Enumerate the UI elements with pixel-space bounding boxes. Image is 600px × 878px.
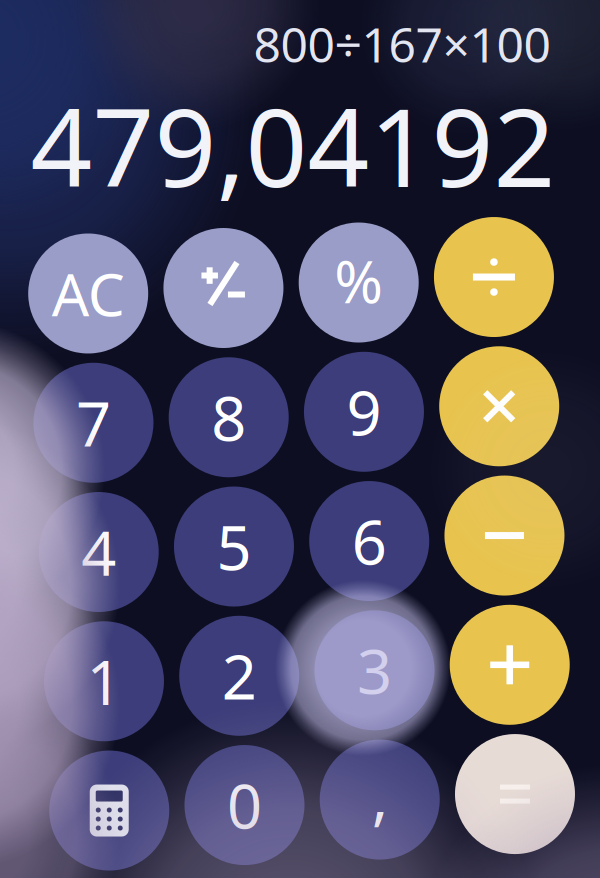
button[interactable]: Minus (444, 475, 564, 595)
staticText: 9 (346, 371, 381, 452)
button[interactable]: 6 (309, 481, 429, 601)
button[interactable]: 9 (304, 352, 424, 472)
button[interactable]: 2 (179, 616, 299, 736)
staticText: 6 (352, 500, 387, 582)
staticText: 1 (86, 641, 121, 722)
button[interactable]: 0 (184, 745, 304, 865)
staticText: 3 (357, 630, 392, 711)
button[interactable]: 5 (174, 486, 294, 606)
staticText: 8 (211, 376, 246, 458)
staticText: % (334, 242, 383, 319)
button[interactable]: 8 (169, 357, 289, 477)
button[interactable]: 1 (44, 621, 164, 741)
staticText: 2 (222, 635, 257, 716)
button[interactable]: Multiply (439, 346, 559, 466)
button[interactable]: % (299, 222, 419, 342)
button[interactable]: 3 (314, 610, 434, 730)
button[interactable]: , (320, 740, 440, 860)
staticText: 7 (76, 382, 111, 463)
button[interactable]: AC (28, 233, 148, 353)
staticText: AC (52, 254, 125, 332)
staticText: 479,04192 (30, 73, 555, 217)
staticText: 4 (81, 511, 116, 593)
button[interactable]: Equals (455, 734, 575, 854)
button[interactable]: Plus (450, 605, 570, 725)
staticText: , (372, 755, 388, 836)
button[interactable]: Calculator history (49, 750, 169, 870)
button[interactable]: 4 (39, 492, 159, 612)
staticText: 0 (227, 764, 262, 846)
staticText: 800÷167×100 (253, 12, 550, 76)
button[interactable]: Plus minus (163, 228, 283, 348)
staticText: 5 (216, 506, 251, 587)
button[interactable]: Divide (434, 217, 554, 337)
button[interactable]: 7 (33, 363, 153, 483)
